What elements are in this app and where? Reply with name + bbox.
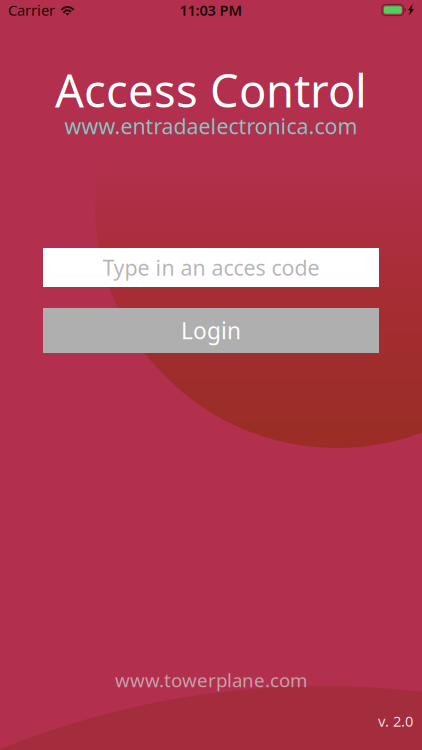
staticText: www.entradaelectronica.com — [64, 112, 357, 140]
staticText: Type in an acces code — [102, 253, 319, 282]
staticText: www.towerplane.com — [115, 668, 307, 692]
staticText: 11:03 PM — [179, 0, 242, 20]
button[interactable]: Login — [43, 308, 379, 353]
staticText: Login — [181, 315, 241, 345]
staticText: Carrier — [8, 0, 55, 20]
staticText: Access Control — [55, 60, 367, 120]
staticText: v. 2.0 — [378, 711, 413, 731]
button[interactable]: Type in an acces code — [43, 248, 379, 287]
